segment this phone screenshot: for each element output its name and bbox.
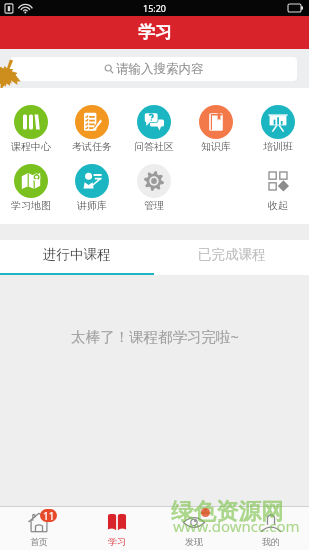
staticText: 绿色资源网 — [171, 497, 284, 525]
staticText: 已完成课程 — [198, 246, 266, 263]
button[interactable]: 请输入搜索内容 — [10, 57, 297, 81]
staticText: 知识库 — [201, 140, 231, 153]
button[interactable]: 考试任务 — [61, 105, 123, 153]
staticText: 进行中课程 — [43, 246, 111, 263]
staticText: 课程中心 — [11, 140, 51, 153]
staticText: 15:20 — [143, 2, 167, 14]
button[interactable]: 发现 — [155, 507, 232, 550]
button[interactable]: 学习地图 — [0, 164, 61, 212]
button[interactable]: 讲师库 — [61, 164, 123, 212]
staticText: 太棒了！课程都学习完啦~ — [71, 326, 239, 346]
staticText: 11 — [43, 509, 55, 522]
button[interactable]: 收起 — [247, 164, 309, 212]
staticText: 请输入搜索内容 — [116, 61, 204, 77]
staticText: 讲师库 — [77, 199, 107, 212]
button[interactable]: 课程中心 — [0, 105, 61, 153]
staticText: 我的 — [262, 536, 280, 547]
staticText: 学习 — [108, 536, 126, 547]
button[interactable]: 11 — [0, 507, 78, 550]
staticText: 学习地图 — [11, 199, 51, 212]
button[interactable]: 培训班 — [247, 105, 309, 153]
button[interactable]: 知识库 — [185, 105, 247, 153]
button[interactable]: 问答社区 — [123, 105, 185, 153]
staticText: 问答社区 — [134, 140, 174, 153]
staticText: 考试任务 — [72, 140, 112, 153]
button[interactable]: 管理 — [123, 164, 185, 212]
button[interactable]: 学习 — [78, 507, 155, 550]
staticText: 管理 — [144, 199, 164, 212]
staticText: 首页 — [30, 536, 48, 547]
staticText: 收起 — [268, 199, 288, 212]
staticText: www.downcc.com — [173, 516, 300, 536]
staticText: 学习 — [138, 22, 172, 43]
button[interactable]: 我的 — [232, 507, 309, 550]
button[interactable]: 已完成课程 — [154, 240, 309, 275]
staticText: 发现 — [185, 536, 203, 547]
button[interactable]: 进行中课程 — [0, 240, 154, 275]
staticText: 培训班 — [263, 140, 293, 153]
